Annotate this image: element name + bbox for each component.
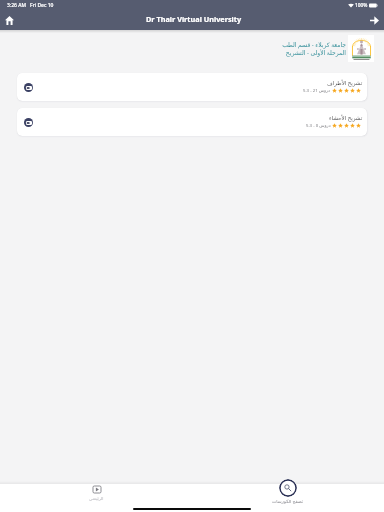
- button[interactable]: الرئيسي: [76, 484, 116, 512]
- button[interactable]: تشريح الأحشاء: [17, 108, 367, 136]
- staticText: 3:26 AM Fri Dec 10: [7, 2, 54, 9]
- button[interactable]: تشريح الأطراف: [17, 73, 367, 101]
- staticText: تصفح الكورسات: [272, 498, 304, 504]
- staticText: الرئيسي: [89, 496, 104, 501]
- button[interactable]: Home: [0, 10, 19, 30]
- staticText: المرحلة الأولى - التشريح: [285, 49, 346, 57]
- button[interactable]: Forward: [364, 10, 384, 30]
- staticText: 5.3 - 0 دروس: [306, 122, 331, 128]
- staticText: تشريح الأحشاء: [329, 114, 363, 121]
- staticText: جامعة كربلاء - قسم الطب: [282, 41, 346, 49]
- staticText: 100%: [355, 2, 368, 9]
- staticText: 5.3 - 21 دروس: [303, 87, 331, 93]
- staticText: تشريح الأطراف: [327, 79, 363, 86]
- staticText: Dr Thair Virtual University: [146, 14, 242, 24]
- button[interactable]: تصفح الكورسات: [268, 484, 308, 512]
